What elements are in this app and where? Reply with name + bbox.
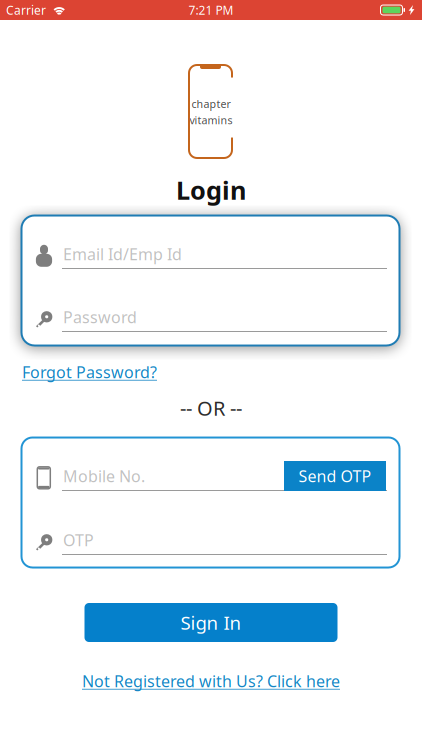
staticText: -- OR -- — [180, 395, 242, 421]
button[interactable]: Forgot Password? — [22, 361, 162, 383]
staticText: Email Id/Emp Id — [63, 243, 182, 265]
staticText: Login — [176, 173, 246, 207]
staticText: Not Registered with Us? Click here — [82, 670, 340, 692]
staticText: vitamins — [189, 113, 232, 127]
staticText: Mobile No. — [63, 465, 145, 487]
staticText: chapter — [191, 97, 230, 111]
button[interactable]: Not Registered with Us? Click here — [82, 670, 340, 692]
staticText: Password — [63, 306, 137, 328]
staticText: OTP — [63, 529, 94, 551]
staticText: Carrier — [6, 2, 46, 18]
button[interactable]: Sign In — [84, 603, 337, 642]
staticText: Forgot Password? — [22, 361, 157, 383]
staticText: 7:21 PM — [188, 2, 233, 18]
button[interactable]: Send OTP — [284, 461, 386, 491]
staticText: Send OTP — [298, 465, 371, 487]
staticText: Sign In — [180, 610, 241, 635]
